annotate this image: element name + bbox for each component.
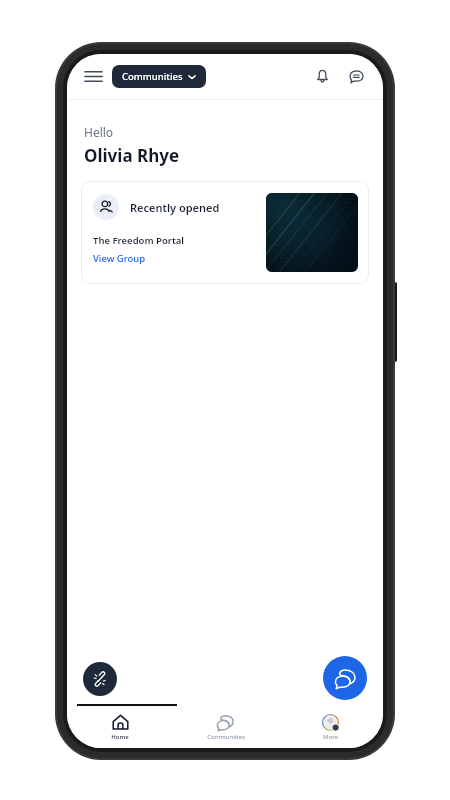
button[interactable]: Messages: [342, 62, 370, 90]
button[interactable]: Home: [67, 711, 173, 744]
button[interactable]: New chat: [323, 656, 367, 700]
button[interactable]: Communities: [173, 711, 278, 744]
button[interactable]: Unlink: [83, 662, 117, 696]
button[interactable]: Recently opened: [81, 181, 369, 284]
staticText: Olivia Rhye: [84, 144, 180, 167]
staticText: The Freedom Portal: [93, 234, 184, 247]
staticText: Home: [111, 733, 129, 741]
button[interactable]: More: [278, 711, 383, 744]
staticText: Communities: [207, 733, 245, 741]
button[interactable]: Notifications: [308, 62, 336, 90]
button[interactable]: View Group: [93, 252, 146, 265]
staticText: More: [323, 733, 338, 741]
button[interactable]: Communities: [112, 65, 206, 88]
staticText: Hello: [84, 124, 114, 140]
staticText: View Group: [93, 252, 146, 265]
staticText: Recently opened: [130, 200, 220, 215]
button[interactable]: Menu: [80, 63, 106, 89]
staticText: Communities: [122, 70, 183, 83]
